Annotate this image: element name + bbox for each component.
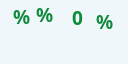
staticText: % [96,9,114,35]
staticText: % [13,4,31,30]
staticText: % [36,2,54,28]
staticText: 0 [72,5,83,31]
